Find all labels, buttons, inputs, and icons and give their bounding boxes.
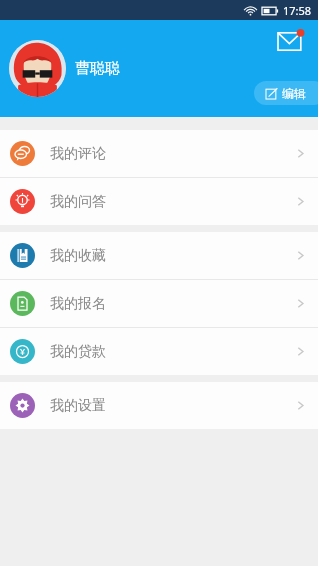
button[interactable]: 我的报名 [0, 280, 318, 327]
button[interactable]: 我的贷款 [0, 328, 318, 375]
staticText: 17:58 [283, 3, 312, 18]
button[interactable]: Avatar [9, 40, 66, 97]
staticText: 我的设置 [50, 397, 106, 415]
staticText: 我的评论 [50, 145, 106, 163]
button[interactable]: 我的问答 [0, 178, 318, 225]
staticText: 我的贷款 [50, 343, 106, 361]
staticText: 我的收藏 [50, 247, 106, 265]
button[interactable]: 我的设置 [0, 382, 318, 429]
button[interactable]: 我的收藏 [0, 232, 318, 279]
button[interactable]: 我的评论 [0, 130, 318, 177]
staticText: 编辑 [282, 86, 306, 101]
staticText: 我的问答 [50, 193, 106, 211]
staticText: 我的报名 [50, 295, 106, 313]
button[interactable]: Messages [278, 28, 308, 58]
button[interactable]: 编辑 [254, 81, 318, 105]
staticText: 曹聪聪 [75, 59, 120, 78]
